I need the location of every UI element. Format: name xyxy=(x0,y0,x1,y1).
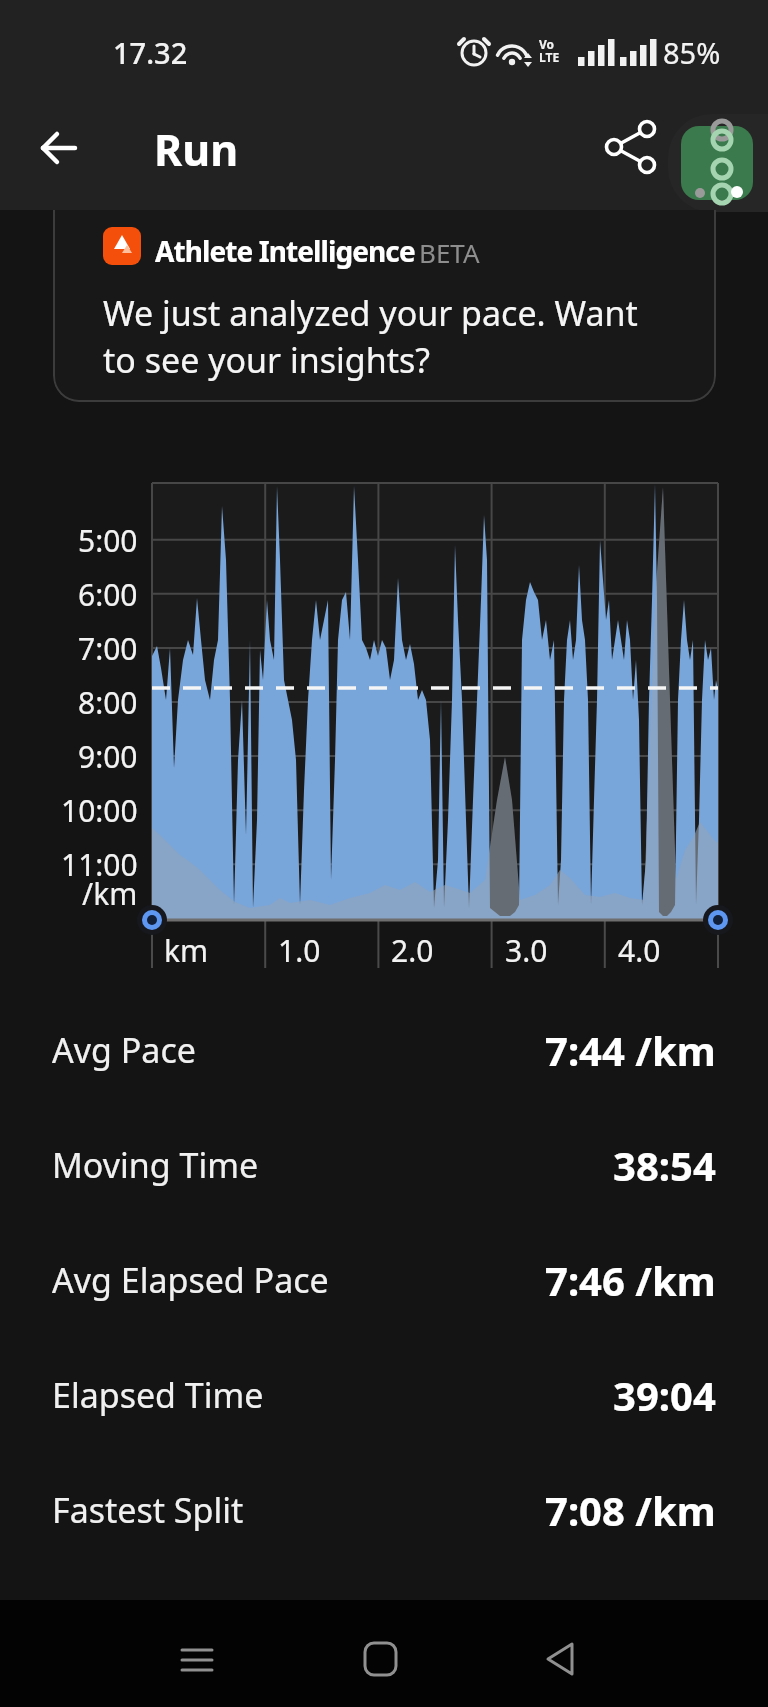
button[interactable]: Avg Pace xyxy=(0,1010,768,1090)
button[interactable] xyxy=(350,1629,410,1689)
staticText: 39:04 xyxy=(613,1368,716,1422)
staticText: Run xyxy=(154,120,239,179)
staticText: Avg Pace xyxy=(52,1027,196,1073)
staticText: 38:54 xyxy=(613,1138,716,1192)
staticText: 8:00 xyxy=(78,682,138,722)
button[interactable]: Moving Time xyxy=(0,1125,768,1205)
staticText: km xyxy=(164,930,209,971)
staticText: 85% xyxy=(663,33,721,72)
staticText: 4.0 xyxy=(618,930,661,971)
staticText: Athlete Intelligence xyxy=(155,232,415,270)
staticText: 9:00 xyxy=(78,736,138,776)
button[interactable] xyxy=(167,1630,227,1690)
button[interactable]: Avg Elapsed Pace xyxy=(0,1240,768,1320)
staticText: 7:44 /km xyxy=(545,1023,716,1077)
staticText: Fastest Split xyxy=(52,1487,244,1533)
staticText: 3.0 xyxy=(505,930,548,971)
staticText: We just analyzed your pace. Want to see … xyxy=(103,290,638,383)
staticText: 7:46 /km xyxy=(545,1253,716,1307)
button[interactable] xyxy=(531,1629,591,1689)
staticText: Avg Elapsed Pace xyxy=(52,1257,329,1303)
staticText: 17.32 xyxy=(113,33,188,72)
staticText: Moving Time xyxy=(52,1142,259,1188)
staticText: 11:00 xyxy=(61,844,138,884)
staticText: Vo LTE xyxy=(539,36,560,66)
button[interactable]: Elapsed Time xyxy=(0,1355,768,1435)
staticText: BETA xyxy=(419,235,480,270)
staticText: 2.0 xyxy=(391,930,434,971)
staticText: 6:00 xyxy=(78,574,138,614)
staticText: 1.0 xyxy=(278,930,321,971)
button[interactable]: Fastest Split xyxy=(0,1470,768,1550)
staticText: Elapsed Time xyxy=(52,1372,264,1418)
staticText: 7:00 xyxy=(78,628,138,668)
staticText: 5:00 xyxy=(78,520,138,560)
staticText: /km xyxy=(82,873,138,913)
button[interactable] xyxy=(595,112,665,182)
staticText: 10:00 xyxy=(61,790,138,830)
staticText: 7:08 /km xyxy=(545,1483,716,1537)
button[interactable] xyxy=(30,120,90,180)
button[interactable] xyxy=(668,114,768,212)
button[interactable]: Athlete Intelligence xyxy=(53,210,716,432)
